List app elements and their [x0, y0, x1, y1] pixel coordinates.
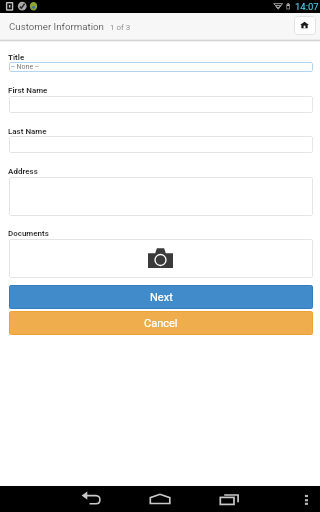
staticText: Cancel	[144, 317, 178, 330]
button[interactable]: Home	[138, 486, 182, 512]
button[interactable]: Take photo	[9, 239, 313, 278]
staticText: Address	[8, 167, 38, 176]
button[interactable]: Cancel	[9, 311, 313, 335]
button[interactable]: More options	[300, 486, 318, 512]
staticText: -- None --	[11, 63, 39, 71]
button[interactable]: Next	[9, 285, 313, 309]
staticText: Documents	[8, 229, 49, 238]
button[interactable]: -- None --	[9, 62, 313, 72]
button[interactable]: Home	[294, 16, 316, 35]
button[interactable]	[9, 177, 313, 216]
button[interactable]: Back	[68, 486, 116, 512]
button[interactable]	[9, 136, 313, 153]
staticText: Customer Information	[9, 21, 104, 32]
button[interactable]: Recent apps	[208, 486, 252, 512]
staticText: 1 of 3	[110, 23, 131, 32]
staticText: First Name	[8, 86, 48, 95]
staticText: Last Name	[8, 127, 47, 136]
staticText: Next	[150, 291, 173, 304]
staticText: 14:07	[295, 1, 319, 12]
button[interactable]	[9, 96, 313, 113]
staticText: Title	[8, 53, 25, 62]
